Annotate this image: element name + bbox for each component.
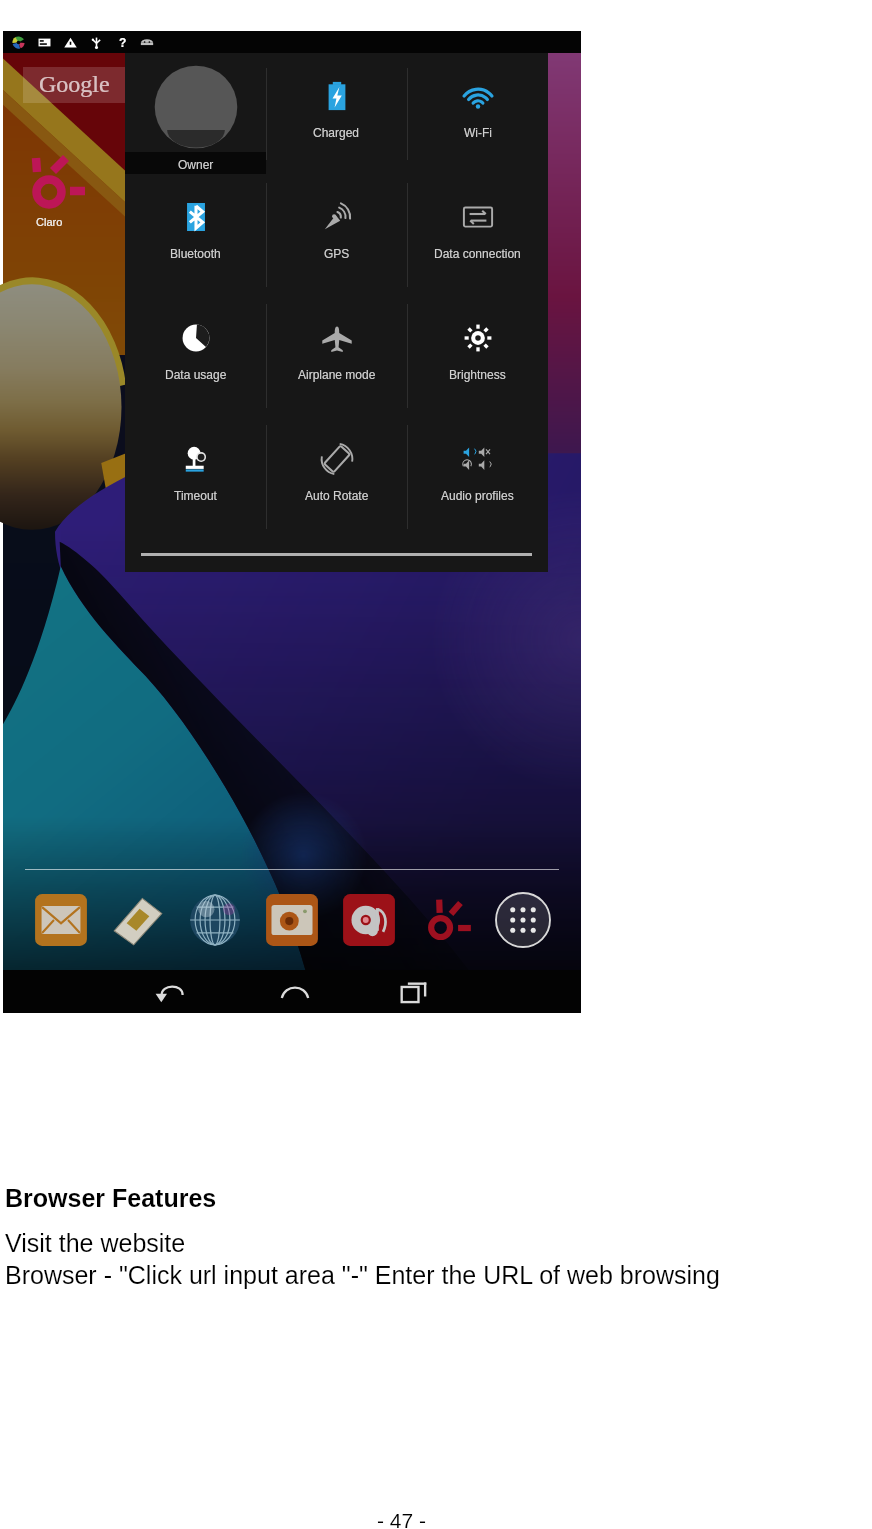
staticText: Brightness bbox=[449, 368, 506, 381]
button[interactable]: Apps bbox=[496, 893, 550, 947]
staticText: - 47 - bbox=[377, 1509, 427, 1529]
staticText: Visit the website Browser - "Click url i… bbox=[5, 1229, 720, 1290]
staticText: Data connection bbox=[434, 247, 521, 260]
button[interactable]: Music bbox=[342, 893, 396, 947]
staticText: Auto Rotate bbox=[305, 489, 369, 502]
button[interactable]: Camera bbox=[265, 893, 319, 947]
button[interactable]: Google search bbox=[23, 67, 443, 103]
button[interactable]: Wi-Fi bbox=[407, 53, 548, 174]
button[interactable]: Claro bbox=[419, 893, 473, 947]
staticText: Timeout bbox=[174, 489, 217, 502]
button[interactable]: Recents bbox=[391, 970, 437, 1013]
staticText: Owner bbox=[178, 158, 214, 171]
button[interactable]: SIM Toolkit bbox=[111, 893, 165, 947]
button[interactable]: Data connection bbox=[407, 174, 548, 295]
staticText: Data usage bbox=[165, 368, 227, 381]
button[interactable]: Bluetooth bbox=[125, 174, 266, 295]
button[interactable]: Auto Rotate bbox=[266, 416, 407, 537]
button[interactable]: Brightness bbox=[407, 295, 548, 416]
staticText: GPS bbox=[324, 247, 350, 260]
staticText: Airplane mode bbox=[298, 368, 376, 381]
button[interactable]: Charged bbox=[266, 53, 407, 174]
button[interactable]: Browser bbox=[188, 893, 242, 947]
button[interactable]: Home bbox=[272, 970, 318, 1013]
staticText: Audio profiles bbox=[441, 489, 514, 502]
button[interactable]: Timeout bbox=[125, 416, 266, 537]
staticText: Wi-Fi bbox=[464, 126, 492, 139]
staticText: Bluetooth bbox=[170, 247, 221, 260]
button[interactable]: Back bbox=[147, 970, 193, 1013]
staticText: Charged bbox=[313, 126, 360, 139]
staticText: Browser Features bbox=[5, 1184, 217, 1212]
staticText: ? bbox=[119, 36, 127, 49]
button[interactable]: Data usage bbox=[125, 295, 266, 416]
button[interactable]: Owner bbox=[125, 53, 266, 174]
staticText: Claro bbox=[36, 216, 63, 228]
button[interactable]: Email bbox=[34, 893, 88, 947]
staticText: Google bbox=[39, 71, 110, 98]
button[interactable]: GPS bbox=[266, 174, 407, 295]
button[interactable]: Audio profiles bbox=[407, 416, 548, 537]
button[interactable]: Airplane mode bbox=[266, 295, 407, 416]
